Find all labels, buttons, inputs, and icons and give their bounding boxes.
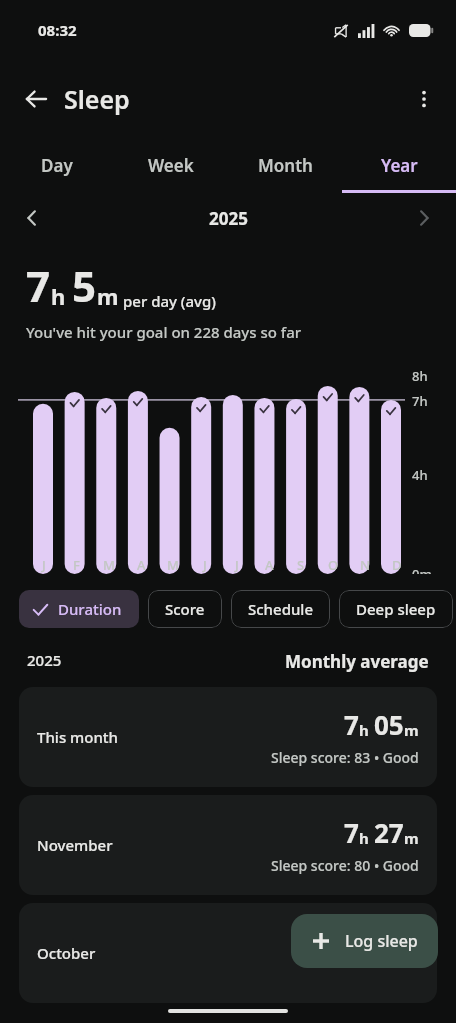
staticText: Deep sleep — [356, 599, 436, 619]
staticText: 27 — [374, 815, 404, 850]
staticText: h — [359, 949, 369, 969]
button[interactable]: November — [19, 795, 437, 895]
staticText: m — [404, 949, 419, 969]
staticText: 39 — [374, 936, 404, 971]
staticText: Sleep score: 83 • Good — [271, 748, 419, 767]
staticText: A — [265, 556, 274, 574]
staticText: October — [37, 943, 96, 963]
staticText: 0m — [412, 565, 432, 574]
staticText: Year — [381, 154, 418, 177]
staticText: 05 — [374, 707, 404, 742]
button[interactable]: More options — [400, 75, 448, 123]
staticText: 4h — [412, 466, 428, 484]
staticText: 2025 — [27, 650, 62, 670]
button[interactable]: Duration — [19, 590, 139, 628]
staticText: Week — [148, 154, 194, 177]
staticText: Schedule — [248, 599, 313, 619]
staticText: Score — [165, 599, 205, 619]
button[interactable]: Month — [228, 137, 342, 193]
staticText: F — [73, 556, 80, 574]
button[interactable]: Schedule — [231, 590, 330, 628]
staticText: 7 — [344, 815, 359, 850]
staticText: Sleep score: 80 • Good — [271, 856, 419, 875]
button[interactable]: Next year — [402, 196, 446, 240]
staticText: Duration — [58, 599, 122, 619]
staticText: h — [359, 720, 369, 740]
staticText: m — [404, 828, 419, 848]
staticText: A — [137, 556, 146, 574]
staticText: 5 — [72, 257, 97, 314]
button[interactable]: October — [19, 903, 437, 1003]
button[interactable]: This month — [19, 687, 437, 787]
staticText: M — [103, 556, 115, 574]
staticText: 8h — [412, 367, 428, 385]
staticText: S — [297, 556, 305, 574]
staticText: 7 — [344, 707, 359, 742]
staticText: h — [359, 828, 369, 848]
staticText: 08:32 — [38, 20, 77, 40]
staticText: Log sleep — [345, 930, 418, 952]
staticText: m — [97, 281, 119, 311]
staticText: Day — [41, 154, 73, 177]
staticText: O — [328, 556, 339, 574]
button[interactable]: Back — [12, 75, 60, 123]
staticText: D — [392, 556, 402, 574]
staticText: 2025 — [209, 207, 248, 230]
button[interactable]: Year — [342, 137, 456, 193]
staticText: M — [167, 556, 179, 574]
staticText: h — [51, 281, 66, 311]
button[interactable]: Day — [0, 137, 114, 193]
staticText: per day (avg) — [123, 291, 217, 311]
staticText: This month — [37, 727, 119, 747]
staticText: J — [203, 556, 207, 574]
button[interactable]: Deep sleep — [339, 590, 453, 628]
staticText: You've hit your goal on 228 days so far — [26, 322, 302, 342]
staticText: Month — [258, 154, 313, 177]
staticText: m — [404, 720, 419, 740]
button[interactable]: Log sleep — [291, 914, 438, 968]
staticText: J — [42, 556, 46, 574]
staticText: 7h — [412, 392, 428, 410]
staticText: N — [360, 556, 371, 574]
staticText: 7 — [344, 936, 359, 971]
staticText: Sleep — [64, 82, 130, 116]
button[interactable]: Week — [114, 137, 228, 193]
button[interactable]: Score — [148, 590, 222, 628]
button[interactable]: Previous year — [10, 196, 54, 240]
staticText: J — [235, 556, 239, 574]
staticText: November — [37, 835, 113, 855]
staticText: Monthly average — [285, 650, 429, 673]
staticText: 7 — [26, 257, 51, 314]
